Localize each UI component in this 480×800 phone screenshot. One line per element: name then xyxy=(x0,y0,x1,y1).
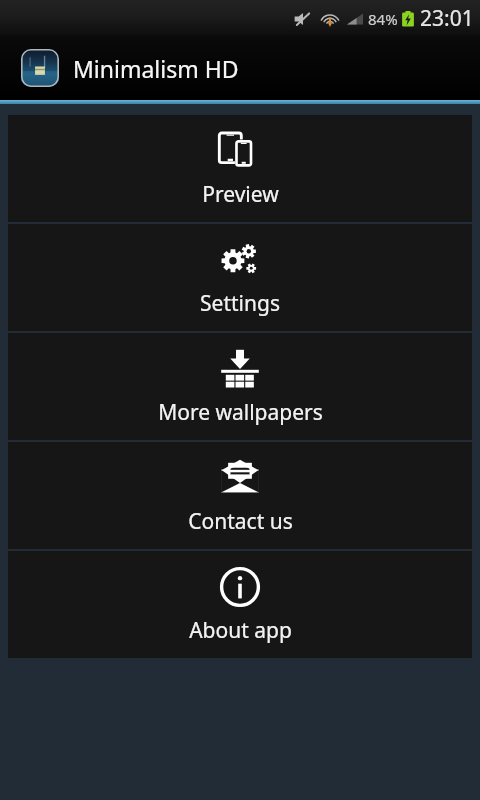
other: Contact us xyxy=(218,459,262,497)
other: More wallpapers xyxy=(220,349,260,389)
staticText: 23:01 xyxy=(420,4,474,33)
staticText: More wallpapers xyxy=(158,398,323,427)
staticText: Preview xyxy=(202,180,279,209)
other: About app xyxy=(220,567,260,607)
staticText: Minimalism HD xyxy=(73,53,239,84)
staticText: Settings xyxy=(200,289,280,318)
button[interactable]: Settings xyxy=(8,224,472,331)
button[interactable]: Contact us xyxy=(8,442,472,549)
button[interactable]: Preview xyxy=(8,115,472,222)
button[interactable]: About app xyxy=(8,551,472,658)
staticText: About app xyxy=(189,616,292,645)
staticText: Contact us xyxy=(188,507,293,536)
other: Preview xyxy=(218,131,262,171)
other: Settings xyxy=(218,241,262,279)
button[interactable]: More wallpapers xyxy=(8,333,472,440)
staticText: 84% xyxy=(368,9,398,29)
